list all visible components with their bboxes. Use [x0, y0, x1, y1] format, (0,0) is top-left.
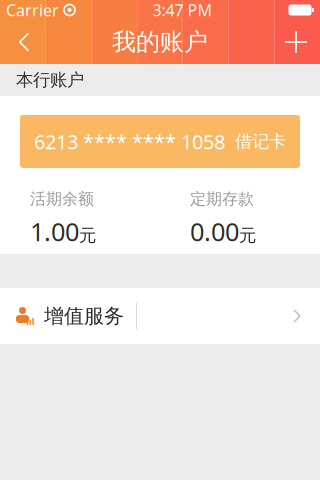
staticText: 0.00 [190, 215, 239, 248]
button[interactable]: Back [0, 20, 48, 64]
staticText: 增值服务 [44, 304, 124, 328]
staticText: 定期存款 [190, 189, 254, 209]
button[interactable]: 增值服务 [0, 288, 320, 344]
staticText: Carrier [6, 0, 59, 21]
staticText: 借记卡 [235, 131, 286, 152]
staticText: 活期余额 [30, 189, 94, 209]
staticText: 1.00 [30, 215, 79, 248]
button[interactable]: Add account [272, 20, 320, 64]
staticText: 我的账户 [112, 27, 208, 57]
staticText: 元 [239, 225, 256, 246]
staticText: 元 [79, 225, 96, 246]
staticText: 6213 **** **** 1058 [34, 128, 225, 155]
staticText: 3:47 PM [152, 0, 212, 21]
staticText: 本行账户 [16, 69, 84, 91]
button[interactable]: 6213 **** **** 1058 [0, 96, 320, 254]
